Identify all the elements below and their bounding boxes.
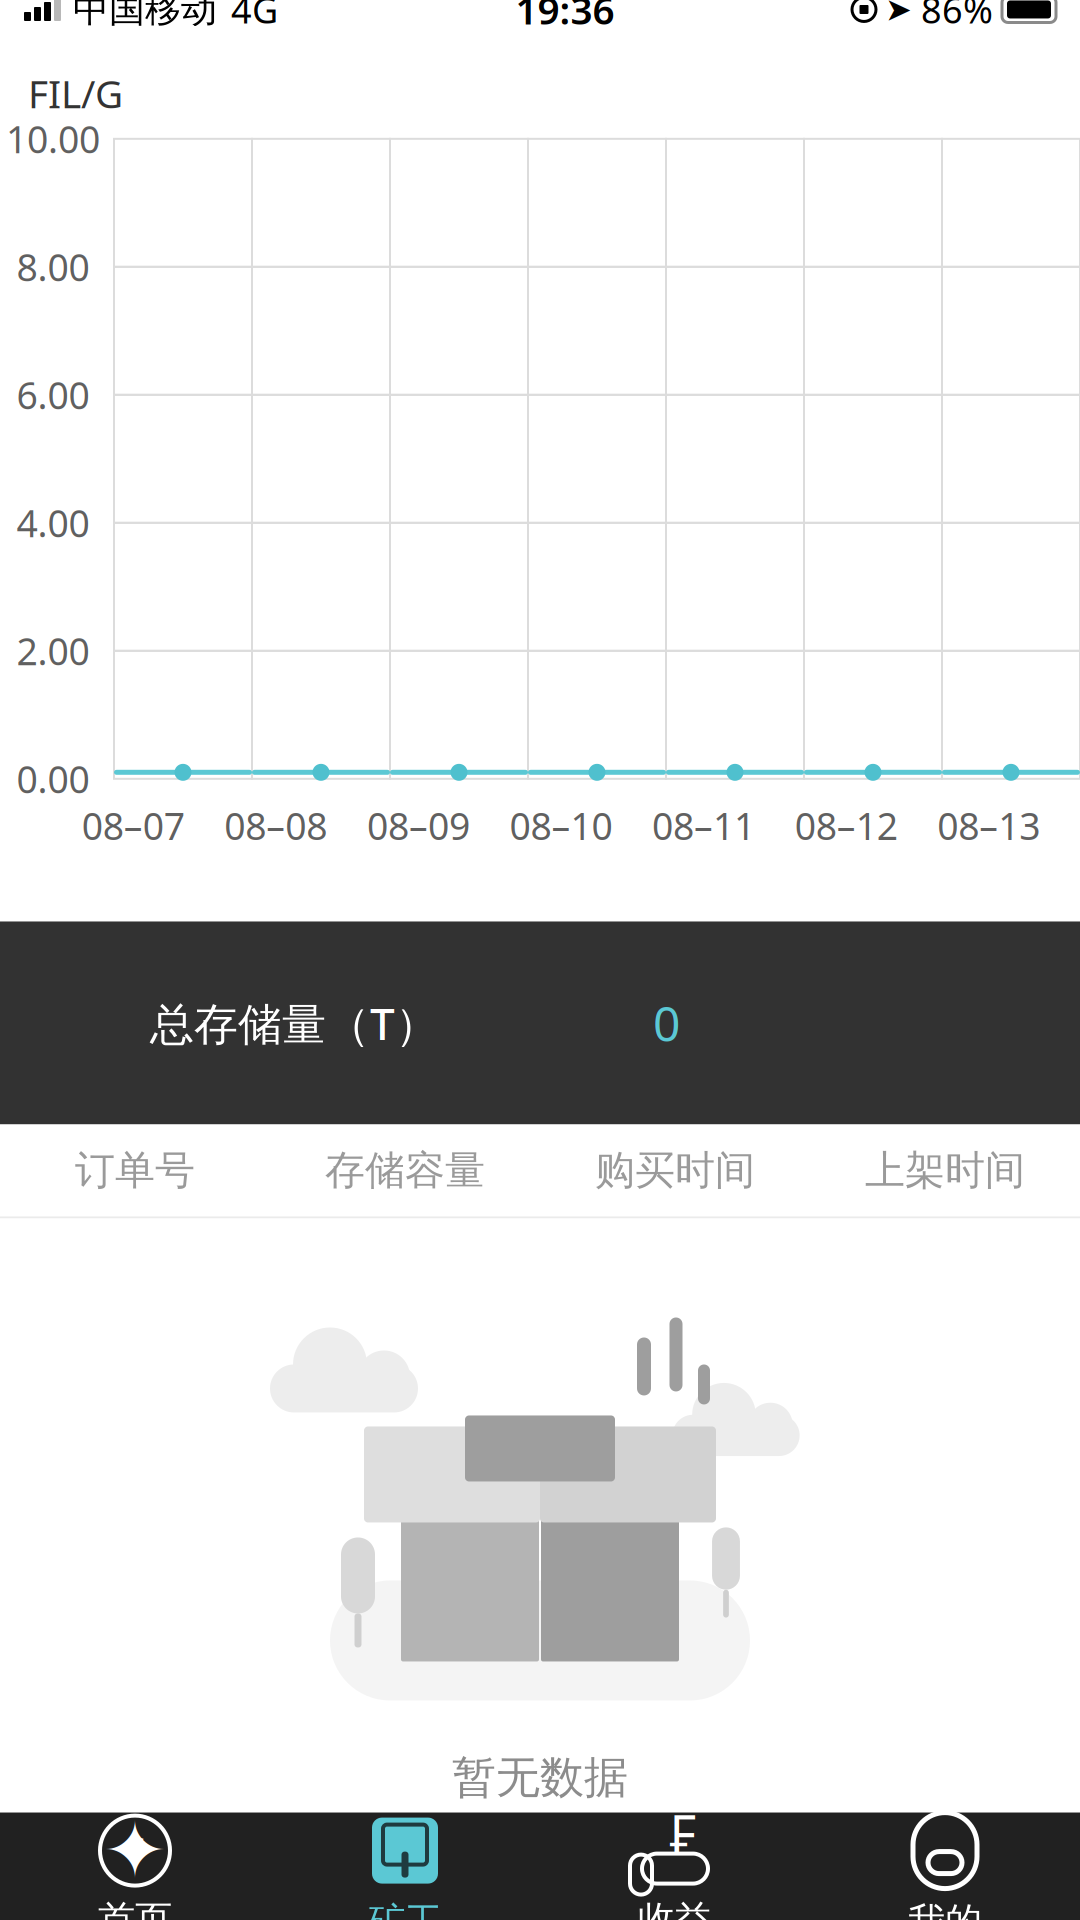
button[interactable]: ₣ [540, 1799, 810, 1920]
staticText: 2.00 [16, 626, 89, 676]
staticText: 中国移动 [73, 0, 217, 32]
staticText: 10.00 [6, 114, 100, 164]
staticText: 08–07 [82, 801, 185, 850]
button[interactable]: 我的 [810, 1797, 1080, 1920]
staticText: 暂无数据 [452, 1750, 628, 1804]
staticText: ✦ [102, 1807, 167, 1894]
staticText: 08–08 [224, 801, 327, 850]
staticText: 86% [921, 0, 993, 33]
staticText: 订单号 [75, 1146, 195, 1195]
staticText: 收益 [638, 1897, 712, 1920]
staticText: 总存储量（T） [150, 994, 439, 1052]
staticText: 4G [231, 0, 278, 33]
staticText: 上架时间 [865, 1146, 1025, 1195]
staticText: 6.00 [16, 370, 89, 420]
staticText: 矿工 [368, 1899, 442, 1920]
staticText: 存储容量 [325, 1146, 485, 1195]
staticText: f [128, 1828, 141, 1874]
staticText: FIL/G [28, 67, 123, 119]
staticText: 08–13 [937, 801, 1040, 850]
staticText: ₣ [667, 1797, 698, 1868]
staticText: 19:36 [515, 0, 614, 35]
staticText: 我的 [908, 1899, 982, 1920]
staticText: 08–10 [509, 801, 612, 850]
staticText: 购买时间 [595, 1146, 755, 1195]
staticText: 08–12 [795, 801, 898, 850]
button[interactable]: 矿工 [270, 1797, 540, 1920]
staticText: 8.00 [16, 242, 89, 292]
button[interactable]: ✦ [0, 1799, 270, 1920]
staticText: 08–09 [367, 801, 470, 850]
staticText: 0.00 [16, 754, 89, 804]
staticText: 08–11 [652, 801, 755, 850]
staticText: 0 [653, 991, 680, 1055]
staticText: ➤ [885, 0, 912, 28]
staticText: 4.00 [16, 498, 89, 548]
staticText: 首页 [98, 1897, 172, 1920]
